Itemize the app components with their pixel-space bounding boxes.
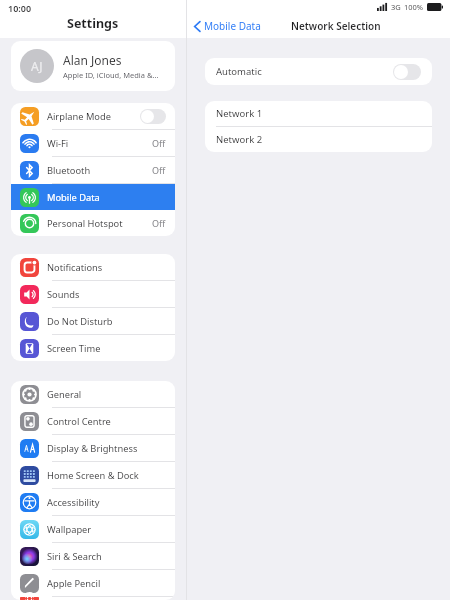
button[interactable]: Do Not Disturb [11,308,175,334]
button[interactable]: Wi-Fi [11,130,175,156]
button[interactable]: Mobile Data [194,19,261,33]
staticText: Alan Jones [63,52,122,68]
staticText: Wi-Fi [47,137,152,150]
button[interactable]: Notifications [11,254,175,280]
button[interactable]: Airplane Mode [11,103,175,129]
button[interactable]: Network 2 [205,127,432,152]
button[interactable]: General [11,381,175,407]
staticText: Mobile Data [47,191,166,204]
staticText: AJ [31,58,43,74]
button[interactable]: Screen Time [11,335,175,361]
staticText: Accessibility [47,496,166,509]
staticText: Display & Brightness [47,442,166,455]
staticText: Siri & Search [47,550,166,563]
button[interactable]: Touch ID & Passcode [11,597,175,600]
button[interactable]: Siri & Search [11,543,175,569]
staticText: Screen Time [47,342,166,355]
button[interactable]: Wallpaper [11,516,175,542]
button[interactable]: Display & Brightness [11,435,175,461]
staticText: Settings [67,15,119,32]
staticText: Sounds [47,288,166,301]
button[interactable]: Control Centre [11,408,175,434]
staticText: General [47,388,166,401]
button[interactable]: Bluetooth [11,157,175,183]
button[interactable]: Mobile Data [11,184,175,210]
button[interactable]: Automatic toggle [393,64,421,80]
button[interactable]: Personal Hotspot [11,210,175,236]
staticText: Network Selection [291,19,381,33]
button[interactable]: AJ [11,41,175,91]
staticText: Personal Hotspot [47,217,152,230]
staticText: Do Not Disturb [47,315,166,328]
button[interactable]: Network 1 [205,101,432,126]
staticText: Off [152,217,166,229]
staticText: Home Screen & Dock [47,469,166,482]
staticText: Network 2 [216,133,263,146]
button[interactable]: Apple Pencil [11,570,175,596]
staticText: Notifications [47,261,166,274]
staticText: 3G [391,2,401,12]
staticText: Off [152,137,166,149]
button[interactable]: Home Screen & Dock [11,462,175,488]
staticText: Airplane Mode [47,110,140,123]
staticText: Bluetooth [47,164,152,177]
staticText: 10:00 [8,2,32,14]
staticText: 100% [404,2,424,12]
staticText: Mobile Data [204,19,261,33]
staticText: Control Centre [47,415,166,428]
staticText: Off [152,164,166,176]
staticText: Wallpaper [47,523,166,536]
button[interactable]: Toggle [140,109,166,124]
staticText: Apple Pencil [47,577,166,590]
staticText: Apple ID, iCloud, Media &… [63,70,159,80]
staticText: Network 1 [216,107,263,120]
button[interactable]: Automatic [205,58,432,85]
staticText: Automatic [216,65,393,78]
button[interactable]: Accessibility [11,489,175,515]
button[interactable]: Sounds [11,281,175,307]
